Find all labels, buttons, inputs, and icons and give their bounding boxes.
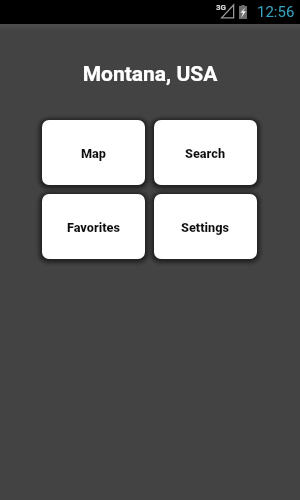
staticText: 3G	[216, 3, 227, 12]
staticText: Search	[185, 146, 226, 161]
button[interactable]: Settings	[154, 194, 257, 259]
staticText: Settings	[181, 220, 230, 235]
staticText: Favorites	[67, 220, 121, 235]
other: Battery charging	[239, 5, 247, 19]
staticText: Montana, USA	[0, 62, 300, 87]
button[interactable]: Search	[154, 120, 257, 185]
other: 3G signal	[216, 4, 234, 20]
button[interactable]: Favorites	[42, 194, 145, 259]
staticText: 12:56	[257, 3, 295, 21]
staticText: Map	[81, 146, 107, 161]
button[interactable]: Map	[42, 120, 145, 185]
